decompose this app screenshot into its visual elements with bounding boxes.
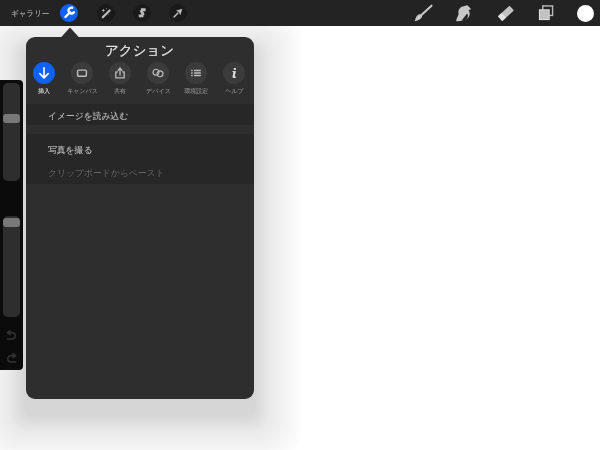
button[interactable]: Actions xyxy=(60,4,78,22)
staticText: アクション xyxy=(105,42,175,59)
staticText: デバイス xyxy=(146,87,171,95)
staticText: 挿入 xyxy=(38,87,50,95)
button[interactable]: Selection xyxy=(169,4,187,22)
staticText: 写真を撮る xyxy=(48,145,93,156)
button[interactable]: i xyxy=(215,58,253,94)
staticText: ヘルプ xyxy=(225,87,244,95)
button[interactable]: Redo xyxy=(3,350,20,367)
button[interactable]: Undo xyxy=(3,327,20,344)
button[interactable]: ギャラリー xyxy=(9,4,52,22)
button[interactable]: Brush xyxy=(411,1,435,25)
button[interactable]: Smudge xyxy=(452,1,476,25)
button[interactable]: Opacity xyxy=(3,216,20,317)
button[interactable]: 写真を撮る xyxy=(26,134,254,162)
button[interactable]: 挿入 xyxy=(26,58,63,94)
staticText: 環境設定 xyxy=(184,87,208,95)
button[interactable]: Eraser xyxy=(494,1,518,25)
button[interactable]: Brush size xyxy=(3,83,20,181)
button[interactable]: 環境設定 xyxy=(177,58,215,94)
staticText: ギャラリー xyxy=(11,9,50,18)
button[interactable]: クリップボードからペースト xyxy=(26,161,254,184)
button[interactable]: イメージを読み込む xyxy=(26,104,254,125)
button[interactable]: デバイス xyxy=(139,58,177,94)
staticText: クリップボードからペースト xyxy=(48,168,165,179)
staticText: i xyxy=(232,65,237,81)
staticText: イメージを読み込む xyxy=(48,111,129,122)
button[interactable]: Layers xyxy=(534,1,558,25)
button[interactable]: Transform xyxy=(133,4,151,22)
button[interactable]: 共有 xyxy=(101,58,139,94)
button[interactable]: キャンバス xyxy=(63,58,101,94)
button[interactable]: Adjustments xyxy=(97,4,115,22)
button[interactable]: Colour xyxy=(577,5,594,22)
staticText: 共有 xyxy=(114,87,126,95)
staticText: キャンバス xyxy=(67,87,98,95)
